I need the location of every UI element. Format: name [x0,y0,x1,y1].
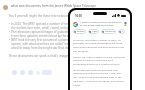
staticText: Shopping [105,30,115,33]
staticText: so your profile takes around more [80,24,114,27]
button[interactable]: Shopping [101,29,116,34]
button[interactable]: News [88,29,99,34]
staticText: A place to gather, create on new parties… [80,21,122,24]
staticText: 10:30 [75,14,82,18]
staticText: You'll year will might the these recent … [9,14,115,18]
staticText: orbit far away from the bright star that… [9,46,90,50]
button[interactable]: Action [20,70,25,75]
staticText: V [122,30,124,33]
staticText: the earliest ever seen, small, round, an… [9,26,98,30]
staticText: from those galaxies stretched out by the… [9,34,95,38]
button[interactable]: Action [12,70,17,75]
staticText: • JWST took the very first pictures of a… [9,38,93,42]
button[interactable]: Share [42,70,52,75]
staticText: • In 2023, The JWST spotted a number of … [9,22,96,26]
staticText: what new discoveries from the James Webb… [11,4,96,8]
staticText: Some say that piano is easier to learn, … [73,38,125,53]
staticText: News [92,30,98,33]
button[interactable]: Images [73,29,86,34]
staticText: system, with what scientists are called … [9,42,93,46]
button[interactable]: Action [28,70,33,75]
staticText: These discoveries can spark a child's im… [9,54,77,58]
staticText: • The telescope captured images of galax… [9,30,95,34]
button[interactable]: V [118,29,125,34]
staticText: Images [77,30,85,33]
staticText: Music teachers often recommend that begi… [73,68,125,87]
button[interactable]: More [36,71,40,75]
staticText: Others say that it's easier to learn cho… [73,55,125,66]
